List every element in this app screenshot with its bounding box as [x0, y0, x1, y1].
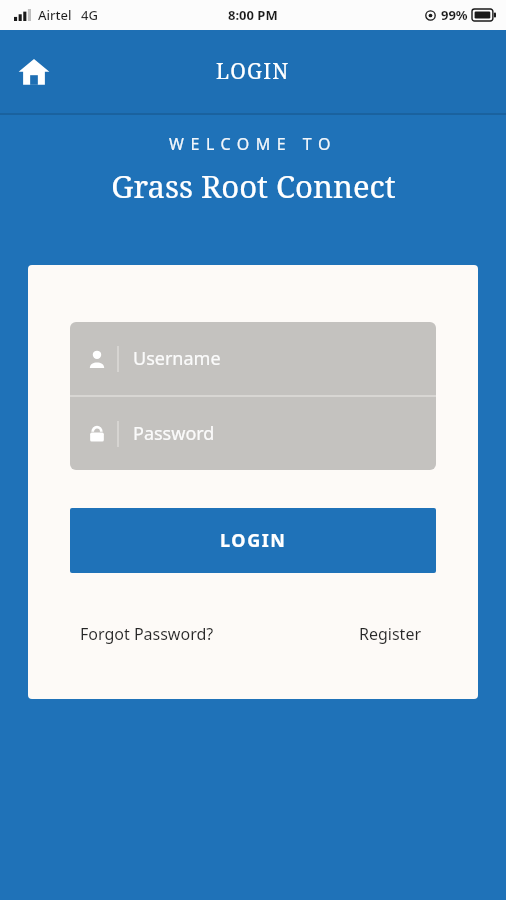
button[interactable]: Password [70, 397, 436, 470]
staticText: WELCOME TO [169, 133, 337, 155]
staticText: Register [359, 623, 422, 645]
button[interactable]: LOGIN [70, 508, 436, 573]
staticText: LOGIN [220, 528, 287, 553]
button[interactable]: Register [353, 617, 428, 651]
staticText: Grass Root Connect [111, 165, 396, 207]
staticText: Airtel [38, 6, 72, 24]
staticText: Password [133, 421, 215, 446]
staticText: Username [133, 346, 221, 371]
staticText: 99% [441, 6, 468, 24]
button[interactable]: Username [70, 322, 436, 395]
button[interactable]: Forgot Password? [74, 617, 220, 651]
button[interactable]: Home [10, 48, 58, 96]
staticText: 8:00 PM [228, 6, 278, 24]
staticText: 4G [81, 6, 98, 24]
staticText: Forgot Password? [80, 623, 214, 645]
staticText: LOGIN [216, 57, 290, 86]
